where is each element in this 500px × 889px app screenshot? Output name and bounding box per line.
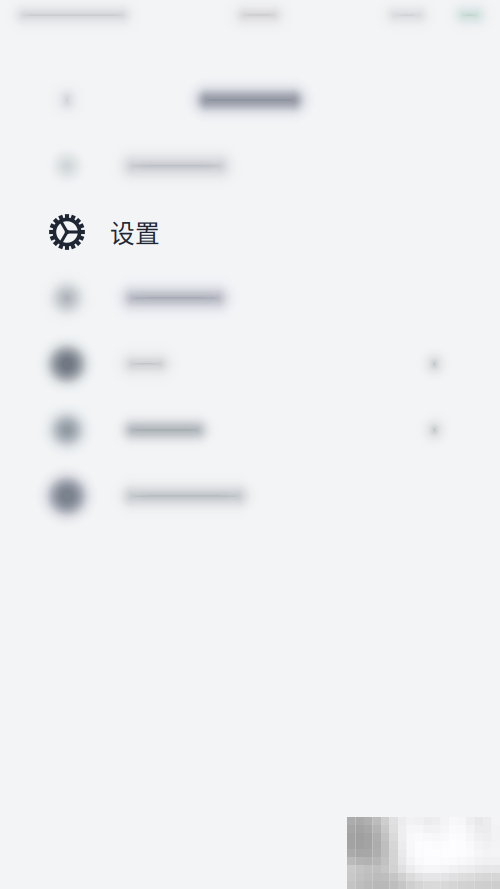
button[interactable]: Back — [48, 78, 86, 122]
button[interactable] — [0, 265, 500, 331]
staticText: 设置 — [110, 214, 160, 250]
button[interactable]: 设置 — [0, 199, 500, 265]
button[interactable] — [0, 397, 500, 463]
button[interactable] — [0, 463, 500, 529]
button[interactable] — [0, 133, 500, 199]
button[interactable] — [0, 331, 500, 397]
